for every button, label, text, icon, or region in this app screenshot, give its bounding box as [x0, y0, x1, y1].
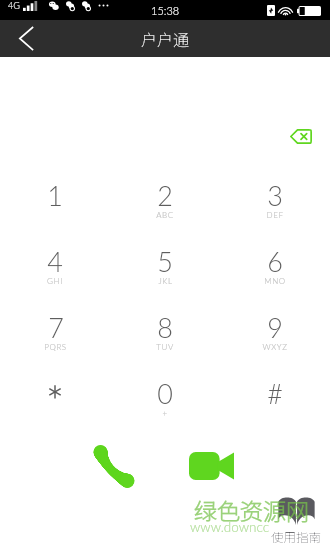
- staticText: DEF: [266, 210, 284, 220]
- button[interactable]: 5: [110, 245, 220, 311]
- staticText: 9: [267, 311, 283, 343]
- staticText: WXYZ: [262, 342, 288, 352]
- staticText: 3: [267, 179, 283, 211]
- staticText: +: [162, 408, 168, 418]
- staticText: #: [267, 377, 283, 409]
- button[interactable]: 3: [220, 179, 330, 245]
- staticText: 2: [157, 179, 173, 211]
- button[interactable]: #: [220, 377, 330, 443]
- staticText: TUV: [156, 342, 174, 352]
- staticText: www.downcc: [190, 519, 270, 535]
- button[interactable]: 6: [220, 245, 330, 311]
- button[interactable]: 2: [110, 179, 220, 245]
- staticText: 0: [157, 377, 173, 409]
- staticText: JKL: [158, 276, 173, 286]
- button[interactable]: 1: [0, 179, 110, 245]
- button[interactable]: 9: [220, 311, 330, 377]
- staticText: PQRS: [44, 342, 67, 352]
- staticText: ABC: [156, 210, 174, 220]
- staticText: 7: [48, 311, 64, 343]
- staticText: 1: [47, 179, 63, 211]
- button[interactable]: 0: [110, 377, 220, 443]
- staticText: 8: [157, 311, 173, 343]
- staticText: 5: [157, 245, 173, 277]
- button[interactable]: 7: [0, 311, 110, 377]
- button[interactable]: [0, 377, 110, 443]
- staticText: 4G: [8, 0, 20, 11]
- button[interactable]: Call: [87, 443, 141, 491]
- staticText: 15:38: [151, 4, 180, 17]
- button[interactable]: Delete: [282, 122, 320, 150]
- button[interactable]: 4: [0, 245, 110, 311]
- staticText: 绿色资源网: [194, 493, 309, 526]
- staticText: 使用指南: [271, 527, 322, 545]
- staticText: 户户通: [141, 27, 190, 50]
- staticText: 4: [47, 245, 63, 277]
- button[interactable]: Back: [0, 20, 52, 57]
- staticText: 6: [267, 245, 283, 277]
- staticText: MNO: [264, 276, 286, 286]
- button[interactable]: Video call: [183, 442, 239, 490]
- button[interactable]: 8: [110, 311, 220, 377]
- staticText: GHI: [47, 276, 63, 286]
